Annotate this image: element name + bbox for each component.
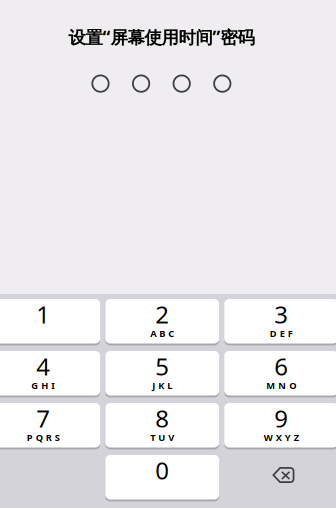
staticText: 设置“屏幕使用时间”密码 — [68, 26, 254, 49]
staticText: A B C — [150, 327, 174, 339]
button[interactable]: 0 — [105, 455, 219, 499]
staticText: 4 — [36, 350, 50, 382]
button[interactable]: 3 — [224, 299, 336, 343]
staticText: 8 — [155, 402, 169, 434]
staticText: D E F — [270, 327, 293, 339]
button[interactable]: 1 — [0, 299, 100, 343]
staticText: 0 — [155, 454, 169, 486]
staticText: T U V — [150, 431, 174, 443]
staticText: 6 — [274, 350, 288, 382]
staticText: 9 — [274, 402, 288, 434]
staticText: 5 — [155, 350, 169, 382]
staticText: W X Y Z — [264, 431, 299, 443]
button[interactable]: 8 — [105, 403, 219, 447]
staticText: 1 — [36, 298, 50, 330]
button[interactable]: 5 — [105, 351, 219, 395]
staticText: P Q R S — [27, 431, 60, 443]
button[interactable]: 6 — [224, 351, 336, 395]
staticText: 2 — [155, 298, 169, 330]
staticText: G H I — [31, 379, 55, 391]
button[interactable]: Delete — [224, 455, 336, 499]
button[interactable]: 2 — [105, 299, 219, 343]
button[interactable]: 4 — [0, 351, 100, 395]
staticText: M N O — [266, 379, 296, 391]
button[interactable]: 7 — [0, 403, 100, 447]
staticText: J K L — [152, 379, 172, 391]
staticText: 7 — [36, 402, 50, 434]
button[interactable]: 9 — [224, 403, 336, 447]
staticText: 3 — [274, 298, 288, 330]
